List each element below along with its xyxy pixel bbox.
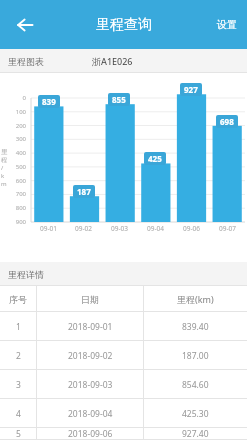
staticText: 09-04 xyxy=(147,224,164,233)
staticText: 927 xyxy=(184,84,198,95)
staticText: 2 xyxy=(16,350,21,362)
staticText: 400 xyxy=(0,149,26,157)
staticText: 855 xyxy=(112,94,126,105)
staticText: 4 xyxy=(16,408,21,420)
staticText: 里程详情 xyxy=(8,269,44,280)
staticText: 2018-09-04 xyxy=(68,408,113,420)
staticText: 425 xyxy=(148,153,162,164)
staticText: 300 xyxy=(0,135,26,143)
staticText: 里程(km) xyxy=(177,293,214,305)
button[interactable]: 1 xyxy=(0,312,247,341)
button[interactable]: 3 xyxy=(0,370,247,399)
staticText: 800 xyxy=(0,204,26,212)
staticText: 里 xyxy=(1,148,7,156)
staticText: 200 xyxy=(0,122,26,130)
staticText: 839 xyxy=(42,96,56,107)
staticText: 程 xyxy=(1,156,7,164)
button[interactable]: 5 xyxy=(0,428,247,440)
button[interactable]: 序号 xyxy=(0,286,247,312)
staticText: 700 xyxy=(0,190,26,198)
staticText: 900 xyxy=(0,218,26,226)
staticText: 1 xyxy=(16,321,21,333)
staticText: 2018-09-06 xyxy=(68,428,113,440)
staticText: 2018-09-01 xyxy=(68,321,113,333)
staticText: m xyxy=(1,180,7,188)
staticText: 2018-09-02 xyxy=(68,350,113,362)
staticText: 839.40 xyxy=(182,321,209,333)
staticText: 09-07 xyxy=(219,224,236,233)
staticText: 设置 xyxy=(217,18,237,31)
staticText: 927.40 xyxy=(182,428,209,440)
staticText: 09-06 xyxy=(183,224,200,233)
staticText: 09-02 xyxy=(75,224,92,233)
staticText: 698 xyxy=(220,116,234,127)
staticText: 5 xyxy=(16,428,21,440)
staticText: 浙A1E026 xyxy=(92,55,133,67)
staticText: 里程图表 xyxy=(8,56,44,67)
button[interactable]: 2 xyxy=(0,341,247,370)
staticText: 里程查询 xyxy=(96,16,152,34)
staticText: 187.00 xyxy=(182,350,209,362)
staticText: 0 xyxy=(0,94,26,102)
staticText: k xyxy=(1,172,5,180)
button[interactable]: 4 xyxy=(0,399,247,428)
staticText: / xyxy=(1,164,4,172)
staticText: 854.60 xyxy=(182,379,209,391)
staticText: 187 xyxy=(77,186,91,197)
staticText: 500 xyxy=(0,163,26,171)
staticText: 600 xyxy=(0,177,26,185)
button[interactable]: Back xyxy=(6,6,44,44)
staticText: 09-03 xyxy=(111,224,128,233)
staticText: 425.30 xyxy=(182,408,209,420)
button[interactable]: 设置 xyxy=(207,0,247,49)
staticText: 序号 xyxy=(9,294,27,305)
staticText: 日期 xyxy=(81,294,99,305)
staticText: 3 xyxy=(16,379,21,391)
staticText: 100 xyxy=(0,108,26,116)
staticText: 2018-09-03 xyxy=(68,379,113,391)
staticText: 09-01 xyxy=(40,224,57,233)
